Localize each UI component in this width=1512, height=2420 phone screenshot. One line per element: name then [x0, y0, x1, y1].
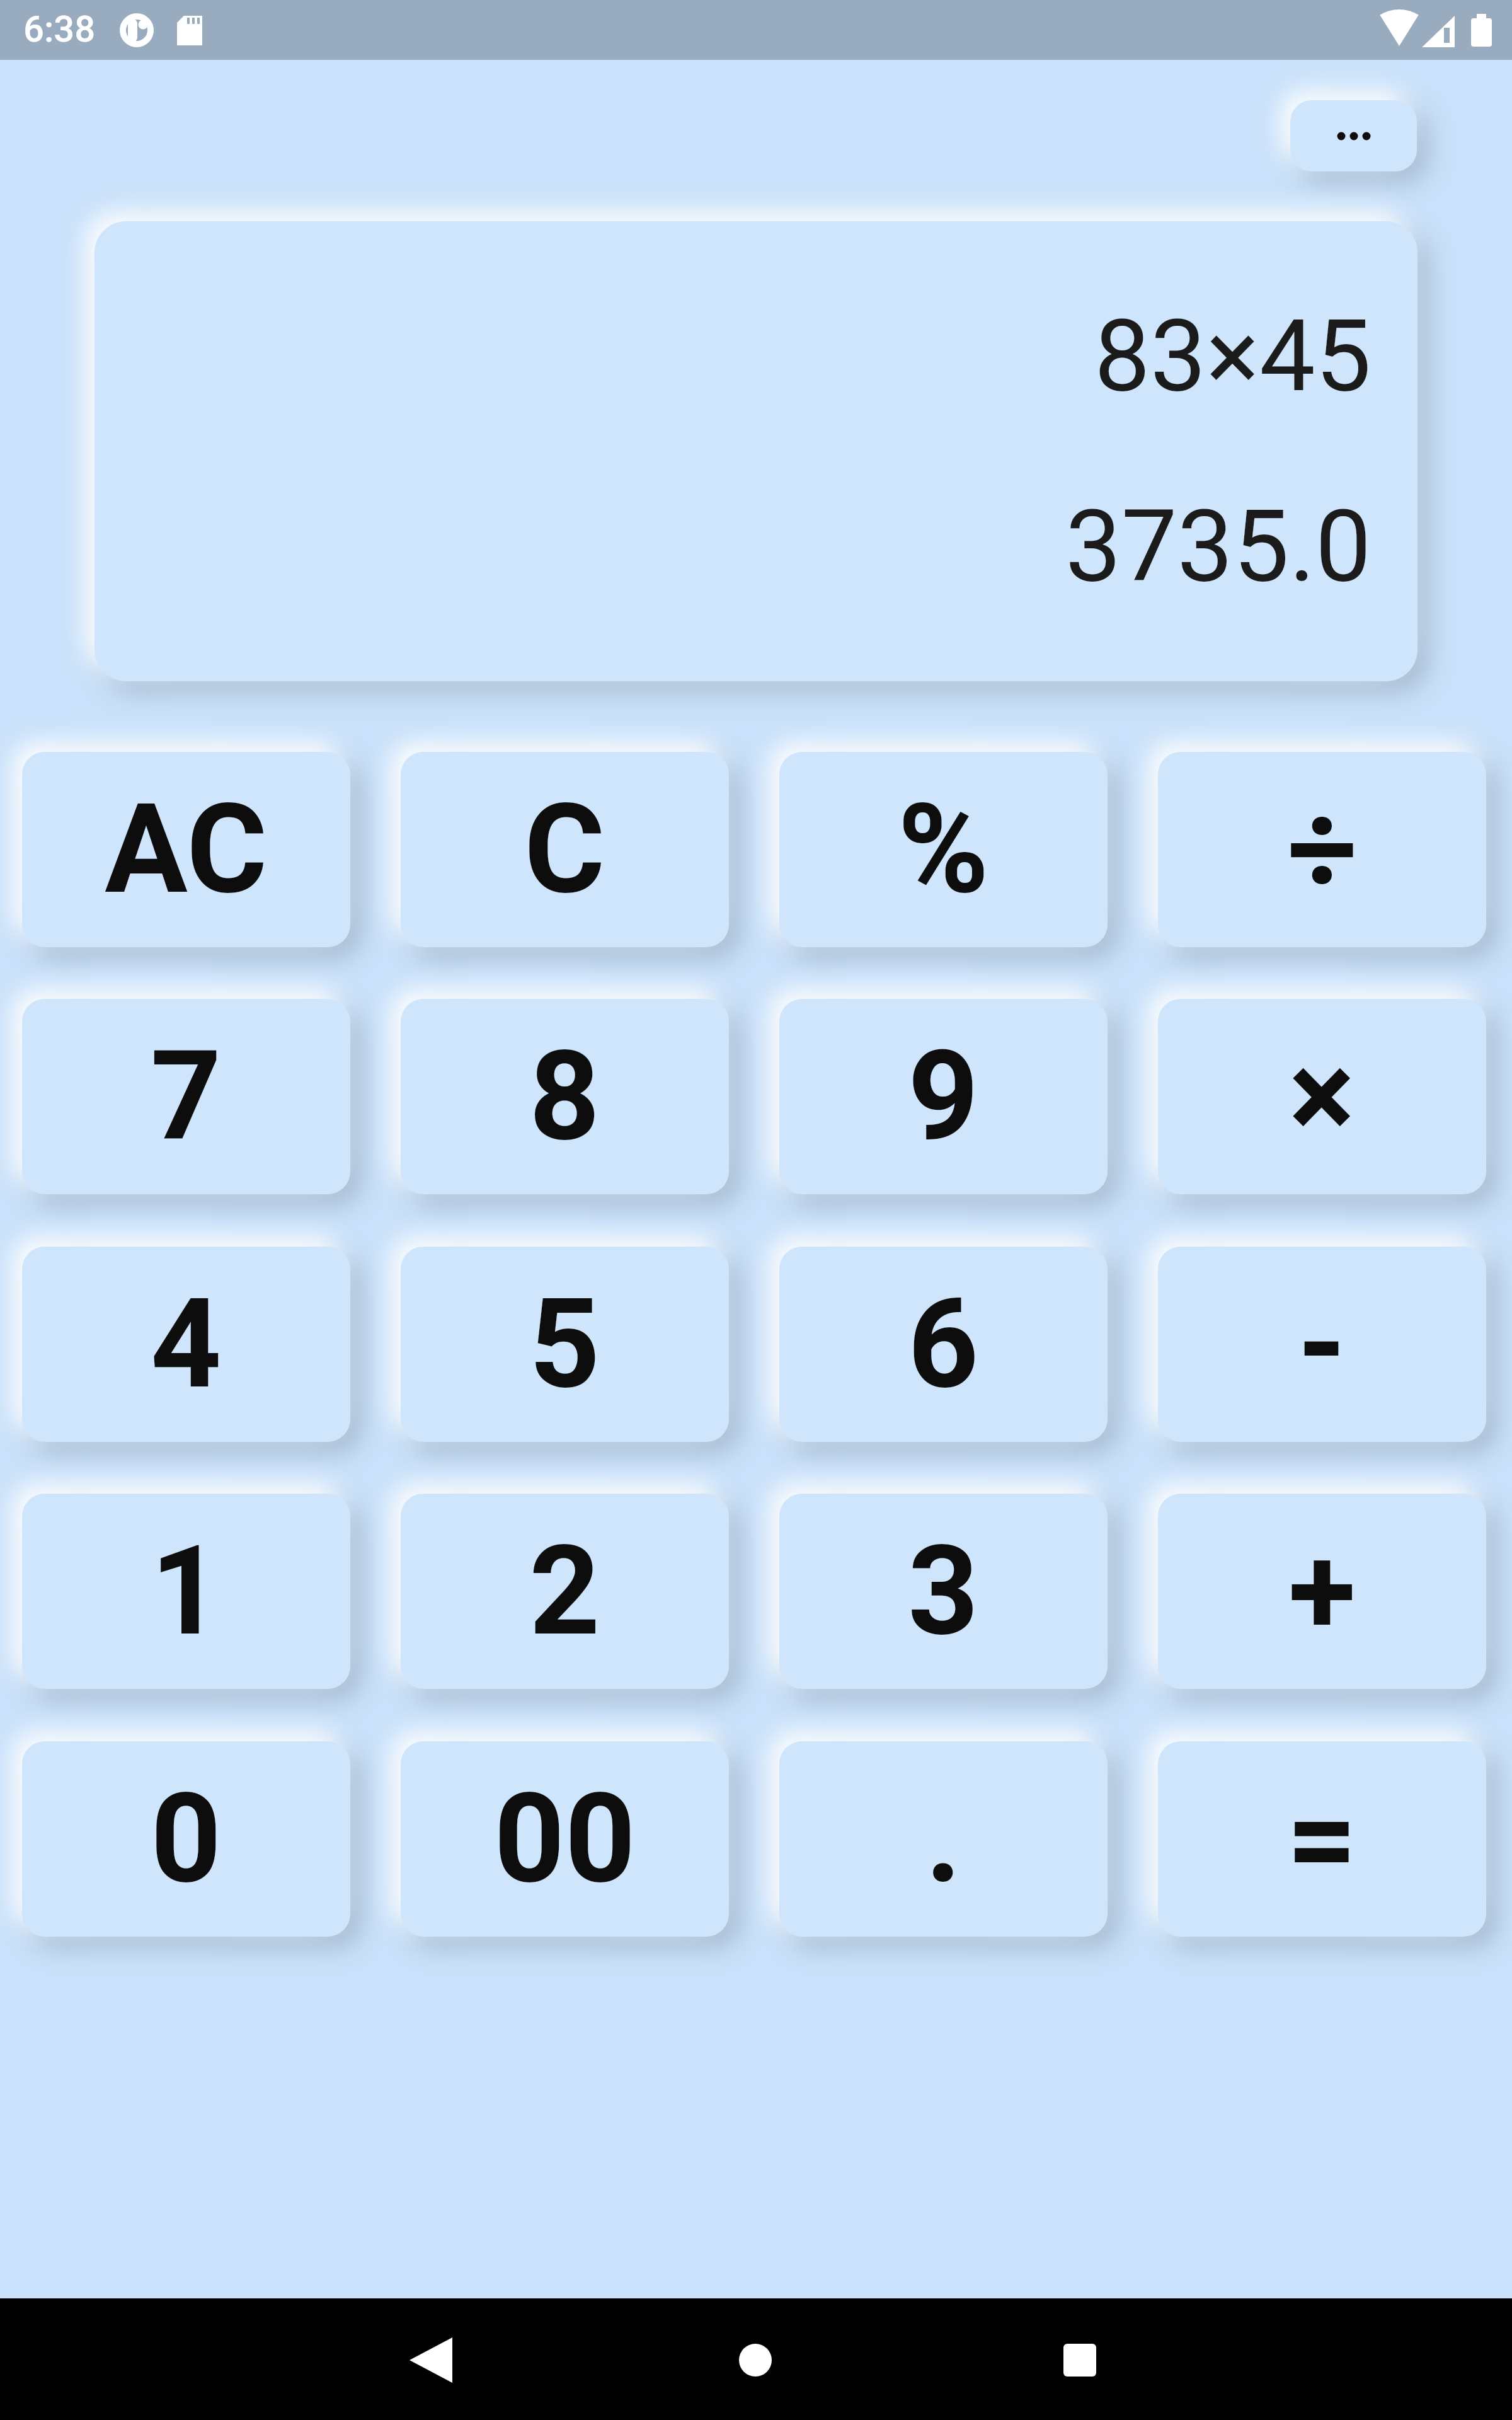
- button[interactable]: .: [779, 1741, 1108, 1937]
- staticText: 3: [908, 1519, 979, 1664]
- button[interactable]: ×: [1158, 999, 1486, 1194]
- staticText: 8: [529, 1024, 600, 1169]
- button[interactable]: C: [401, 752, 729, 947]
- button[interactable]: AC: [22, 752, 350, 947]
- button[interactable]: 3: [779, 1494, 1108, 1689]
- button[interactable]: =: [1158, 1741, 1486, 1937]
- staticText: 00: [494, 1766, 636, 1911]
- staticText: 6: [908, 1272, 979, 1417]
- button[interactable]: 4: [22, 1247, 350, 1442]
- button[interactable]: 0: [22, 1741, 350, 1937]
- staticText: 6:38: [23, 8, 96, 50]
- button[interactable]: [1023, 2322, 1137, 2398]
- staticText: 5: [529, 1272, 600, 1417]
- button[interactable]: 8: [401, 999, 729, 1194]
- staticText: 9: [908, 1024, 979, 1169]
- button[interactable]: 00: [401, 1741, 729, 1937]
- button[interactable]: [1290, 100, 1417, 171]
- staticText: ×: [1289, 1024, 1355, 1169]
- button[interactable]: 2: [401, 1494, 729, 1689]
- staticText: AC: [105, 777, 268, 922]
- button[interactable]: %: [779, 752, 1108, 947]
- staticText: %: [898, 777, 989, 922]
- staticText: 1: [151, 1519, 222, 1664]
- staticText: 4: [151, 1272, 222, 1417]
- staticText: 83×45: [1094, 297, 1372, 414]
- button[interactable]: 1: [22, 1494, 350, 1689]
- staticText: 7: [151, 1024, 222, 1169]
- staticText: C: [524, 777, 605, 922]
- button[interactable]: ÷: [1158, 752, 1486, 947]
- staticText: 0: [151, 1766, 222, 1911]
- button[interactable]: 5: [401, 1247, 729, 1442]
- button[interactable]: +: [1158, 1494, 1486, 1689]
- staticText: -: [1298, 1272, 1346, 1417]
- staticText: 3735.0: [1065, 488, 1372, 604]
- staticText: ÷: [1287, 777, 1358, 922]
- button[interactable]: 7: [22, 999, 350, 1194]
- button[interactable]: [699, 2322, 812, 2398]
- staticText: +: [1288, 1519, 1356, 1664]
- staticText: .: [925, 1766, 962, 1911]
- button[interactable]: 9: [779, 999, 1108, 1194]
- staticText: 2: [529, 1519, 600, 1664]
- staticText: =: [1286, 1766, 1358, 1911]
- button[interactable]: 6: [779, 1247, 1108, 1442]
- button[interactable]: -: [1158, 1247, 1486, 1442]
- button[interactable]: [373, 2322, 486, 2398]
